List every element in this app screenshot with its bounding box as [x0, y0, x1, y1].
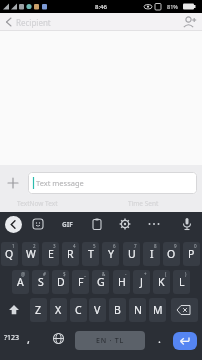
button[interactable]: [171, 298, 198, 322]
button[interactable]: M: [149, 298, 166, 322]
button[interactable]: A: [12, 270, 29, 294]
staticText: V: [94, 303, 101, 317]
staticText: Y: [108, 247, 114, 261]
button[interactable]: ?123: [1, 326, 23, 350]
button[interactable]: P: [183, 242, 200, 266]
staticText: U: [128, 247, 136, 261]
staticText: 0: [194, 243, 197, 249]
staticText: 9: [174, 243, 177, 249]
staticText: F: [78, 275, 84, 289]
staticText: B: [114, 303, 121, 317]
button[interactable]: W: [22, 242, 39, 266]
staticText: -: [125, 271, 127, 277]
button[interactable]: [5, 175, 21, 191]
staticText: 2: [33, 243, 36, 249]
staticText: 6: [113, 243, 116, 249]
button[interactable]: C: [70, 298, 87, 322]
button[interactable]: [90, 217, 104, 231]
staticText: Recipient: [16, 17, 51, 28]
staticText: Z: [35, 303, 42, 317]
button[interactable]: O: [163, 242, 180, 266]
staticText: D: [57, 275, 65, 289]
staticText: X: [55, 303, 62, 317]
button[interactable]: .: [152, 326, 166, 350]
staticText: .: [158, 331, 161, 346]
button[interactable]: J: [133, 270, 150, 294]
staticText: E: [48, 247, 54, 261]
staticText: &: [102, 271, 106, 277]
staticText: 4: [73, 243, 76, 249]
button[interactable]: [146, 217, 162, 231]
staticText: T: [88, 247, 94, 261]
button[interactable]: [2, 298, 28, 322]
button[interactable]: X: [50, 298, 67, 322]
staticText: O: [167, 247, 176, 261]
staticText: C: [75, 303, 82, 317]
staticText: #: [43, 271, 46, 277]
staticText: (: [165, 271, 167, 277]
staticText: L: [179, 275, 185, 289]
staticText: G: [97, 275, 105, 289]
button[interactable]: [31, 217, 45, 231]
staticText: Q: [5, 247, 14, 261]
button[interactable]: L: [173, 270, 190, 294]
staticText: 8: [154, 243, 157, 249]
staticText: I: [150, 247, 154, 261]
button[interactable]: EN · TL: [75, 331, 145, 350]
button[interactable]: GIF: [58, 217, 76, 231]
staticText: 7: [134, 243, 137, 249]
staticText: A: [17, 275, 24, 289]
button[interactable]: [51, 331, 66, 346]
staticText: +: [144, 271, 147, 277]
staticText: @: [21, 271, 26, 277]
button[interactable]: K: [153, 270, 170, 294]
staticText: W: [26, 247, 36, 261]
button[interactable]: N: [129, 298, 146, 322]
staticText: 8:46: [95, 3, 107, 11]
staticText: 1: [12, 243, 15, 249]
staticText: R: [67, 247, 74, 261]
button[interactable]: T: [82, 242, 99, 266]
staticText: GIF: [62, 220, 73, 229]
staticText: J: [140, 275, 143, 289]
button[interactable]: Q: [1, 242, 18, 266]
button[interactable]: [2, 15, 16, 29]
staticText: 81%: [167, 3, 178, 10]
button[interactable]: U: [123, 242, 140, 266]
button[interactable]: F: [72, 270, 89, 294]
button[interactable]: [173, 332, 197, 350]
staticText: Text message: [36, 178, 84, 188]
staticText: 3: [53, 243, 56, 249]
staticText: 5: [93, 243, 96, 249]
staticText: $: [63, 271, 66, 277]
staticText: S: [38, 275, 44, 289]
button[interactable]: I: [143, 242, 160, 266]
button[interactable]: Y: [102, 242, 119, 266]
button[interactable]: E: [42, 242, 59, 266]
staticText: M: [153, 303, 163, 317]
button[interactable]: S: [32, 270, 49, 294]
button[interactable]: H: [113, 270, 130, 294]
button[interactable]: ,: [21, 326, 35, 350]
staticText: _: [84, 271, 86, 277]
button[interactable]: [5, 216, 22, 233]
staticText: ,: [27, 331, 30, 346]
button[interactable]: B: [109, 298, 126, 322]
button[interactable]: Z: [30, 298, 47, 322]
button[interactable]: [181, 14, 197, 30]
staticText: TextNow Text: [17, 199, 58, 208]
staticText: ?123: [4, 333, 20, 343]
button[interactable]: [28, 172, 197, 194]
staticText: EN · TL: [96, 336, 125, 346]
staticText: ): [185, 271, 187, 277]
button[interactable]: G: [92, 270, 109, 294]
button[interactable]: [118, 217, 132, 231]
button[interactable]: [180, 216, 194, 232]
button[interactable]: R: [62, 242, 79, 266]
button[interactable]: V: [89, 298, 106, 322]
staticText: P: [188, 247, 195, 261]
staticText: H: [118, 275, 126, 289]
button[interactable]: D: [52, 270, 69, 294]
staticText: K: [158, 275, 165, 289]
staticText: Time Sent: [128, 199, 159, 208]
